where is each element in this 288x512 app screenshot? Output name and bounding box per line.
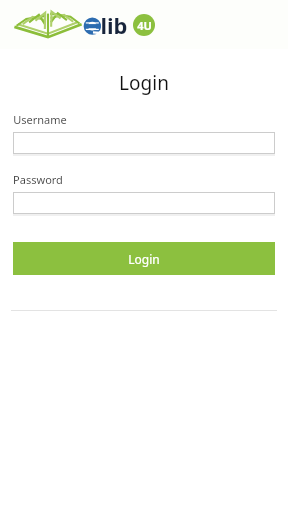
staticText: Password [13, 172, 63, 187]
button[interactable]: Password input field [13, 192, 275, 214]
button[interactable]: Login [13, 242, 275, 275]
staticText: Login [119, 70, 169, 96]
staticText: lib [100, 10, 128, 40]
button[interactable]: elib4U logo [0, 0, 288, 49]
staticText: 4U [137, 18, 152, 33]
staticText: Login [128, 251, 160, 267]
staticText: Username [13, 112, 67, 127]
button[interactable]: Username input field [13, 132, 275, 154]
